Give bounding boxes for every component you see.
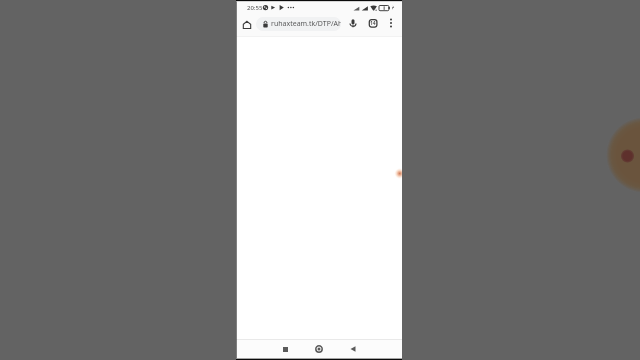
button[interactable]: Home xyxy=(312,342,326,356)
button[interactable]: ruhaxteam.tk/DTP/Ah xyxy=(256,17,341,31)
button[interactable]: Back xyxy=(346,342,360,356)
button[interactable]: Tabs xyxy=(367,17,379,29)
button[interactable]: Home xyxy=(241,19,253,31)
staticText: 20:55 xyxy=(247,4,263,12)
button[interactable]: Recents xyxy=(278,342,292,356)
button[interactable]: Voice search xyxy=(347,17,359,29)
staticText: 14 xyxy=(370,20,376,27)
button[interactable]: More options xyxy=(385,17,397,29)
staticText: ruhaxteam.tk/DTP/Ah xyxy=(271,19,341,29)
